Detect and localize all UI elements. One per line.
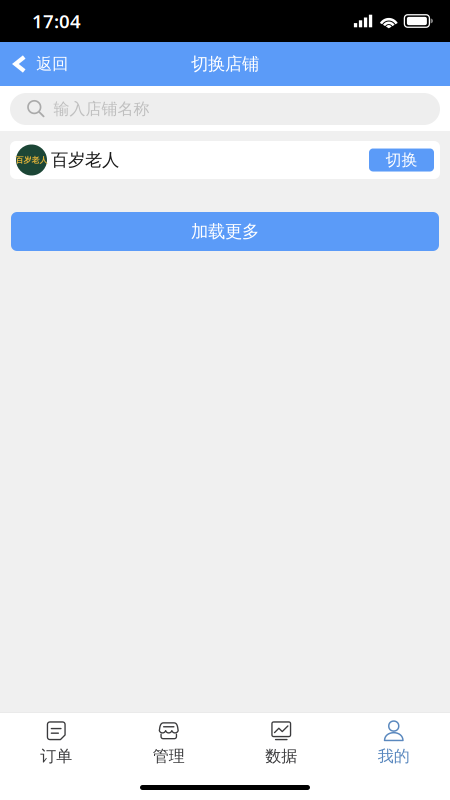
staticText: 加载更多 [191, 221, 259, 242]
button[interactable]: 加载更多 [11, 212, 439, 251]
staticText: 切换 [385, 150, 417, 170]
button[interactable]: 数据 [225, 713, 337, 769]
staticText: 17:04 [32, 9, 81, 33]
button[interactable]: 订单 [0, 713, 112, 769]
staticText: 管理 [153, 746, 185, 766]
staticText: 订单 [40, 746, 72, 766]
staticText: 百岁老人 [15, 155, 47, 165]
button[interactable]: 管理 [112, 713, 225, 769]
button[interactable]: 返回 [0, 42, 80, 86]
staticText: 输入店铺名称 [53, 99, 149, 119]
staticText: 返回 [36, 54, 68, 74]
button[interactable]: 切换 [369, 148, 434, 171]
button[interactable]: 我的 [337, 713, 450, 769]
staticText: 切换店铺 [191, 53, 259, 75]
staticText: 我的 [378, 746, 410, 766]
staticText: 数据 [265, 746, 297, 766]
staticText: 百岁老人 [51, 149, 119, 171]
